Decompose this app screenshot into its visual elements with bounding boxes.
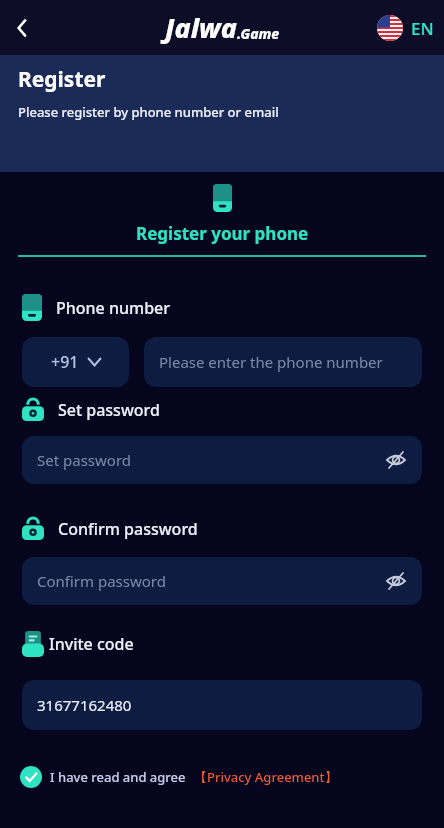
staticText: EN <box>411 17 434 40</box>
button[interactable]: Register your phone <box>0 222 444 245</box>
staticText: Set password <box>58 399 160 421</box>
staticText: Please register by phone number or email <box>18 103 279 121</box>
staticText: 31677162480 <box>37 695 132 715</box>
button[interactable]: Set password <box>37 436 407 484</box>
staticText: Please enter the phone number <box>159 352 383 372</box>
staticText: Confirm password <box>58 518 198 540</box>
button[interactable]: Confirm password <box>37 557 407 605</box>
staticText: Jalwa <box>165 9 237 46</box>
staticText: Confirm password <box>37 571 166 591</box>
staticText: .Game <box>237 24 280 43</box>
button[interactable]: I have read and agree <box>20 766 338 788</box>
staticText: 【Privacy Agreement】 <box>194 768 338 786</box>
button[interactable]: 31677162480 <box>37 680 407 730</box>
staticText: +91 <box>51 351 79 373</box>
button[interactable] <box>7 12 39 44</box>
staticText: Invite code <box>49 633 134 655</box>
button[interactable]: +91 <box>22 337 129 387</box>
button[interactable] <box>385 570 407 592</box>
button[interactable]: Please enter the phone number <box>159 337 407 387</box>
staticText: Register your phone <box>136 222 309 245</box>
staticText: Set password <box>37 450 132 470</box>
staticText: I have read and agree <box>50 768 186 786</box>
button[interactable]: EN <box>377 15 434 41</box>
staticText: Phone number <box>56 297 171 319</box>
button[interactable] <box>385 449 407 471</box>
staticText: Register <box>18 65 106 94</box>
